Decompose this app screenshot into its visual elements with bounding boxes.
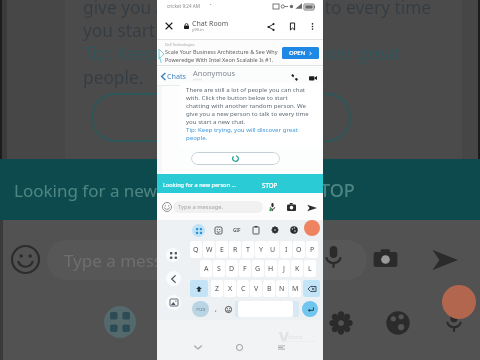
staticText: OPEN [289,49,306,57]
button[interactable]: W [203,241,215,258]
button[interactable]: H [265,260,277,277]
staticText: Type a message. [178,203,224,211]
staticText: N [279,284,285,294]
staticText: Anonymous [193,68,236,78]
staticText: Dell Technologies [165,42,195,47]
button[interactable]: Voice input [266,201,278,213]
staticText: O [296,245,302,255]
button[interactable]: Backspace [303,280,320,297]
button[interactable]: Home [232,340,246,354]
staticText: you start a new chat. [83,19,252,43]
button[interactable]: Keyboard layout [166,248,180,262]
button[interactable]: R [229,241,241,258]
button[interactable]: Keyboard [192,224,205,237]
staticText: K [295,264,300,274]
button[interactable]: J [278,260,290,277]
staticText: W [206,245,213,255]
button[interactable]: Close [160,17,177,34]
staticText: C [241,284,246,294]
button[interactable]: E [216,241,228,258]
button[interactable]: X [224,280,236,297]
staticText: ••••• [193,77,203,84]
button[interactable]: Recents [274,340,288,354]
button[interactable]: Emoji [223,301,233,317]
button[interactable]: Shift [190,280,208,297]
button[interactable]: U [267,241,279,258]
staticText: with. Click the button below to start [186,93,288,101]
staticText: J [283,264,285,274]
staticText: R [233,245,238,255]
button[interactable]: P [306,241,318,258]
button[interactable]: O [293,241,305,258]
button[interactable]: G [252,260,264,277]
staticText: L [308,264,312,274]
staticText: F [243,264,247,274]
button[interactable]: Enter [302,301,318,317]
button[interactable]: N [276,280,288,297]
button[interactable]: Y [255,241,267,258]
button[interactable]: Images [166,295,181,310]
staticText: Looking for a new person ... [163,181,236,189]
button[interactable]: D [226,260,238,277]
button[interactable]: K [291,260,303,277]
button[interactable]: V [250,280,262,297]
staticText: T [246,245,250,255]
button[interactable]: , [211,301,221,317]
button[interactable]: Camera [285,201,297,213]
button[interactable]: Q [190,241,202,258]
staticText: chatting with another random person. We [186,101,307,109]
button[interactable]: Symbols [192,301,209,317]
button[interactable]: I [280,241,292,258]
staticText: A [204,264,209,274]
button[interactable]: S [213,260,225,277]
button[interactable]: Settings [270,225,280,235]
button[interactable]: Share [262,18,279,35]
button[interactable]: A [200,260,212,277]
button[interactable]: OPEN [282,47,319,59]
button[interactable]: Type a message. [173,201,263,213]
button[interactable]: Collapse [166,271,181,286]
staticText: Tip: Keep trying, you will discover grea… [186,125,298,133]
button[interactable]: Voice typing [308,225,318,235]
button[interactable]: B [263,280,275,297]
staticText: • [210,2,212,7]
button[interactable]: Video call [307,72,318,83]
button[interactable]: C [237,280,249,297]
button[interactable]: More options [304,18,321,35]
staticText: Chats [167,71,187,81]
button[interactable]: Call [289,72,300,83]
staticText: Q [193,245,199,255]
button[interactable]: Back [191,340,205,354]
staticText: Tip: Keep trying, you will discover grea… [83,42,401,66]
staticText: Type a message. [64,249,197,272]
button[interactable]: Send [305,201,318,214]
staticText: M [292,284,299,294]
staticText: people. [83,66,144,90]
button[interactable]: L [304,260,316,277]
staticText: Poweredge With Intel Xeon Scalable Is #1… [165,56,274,63]
button[interactable]: M [289,280,301,297]
staticText: Looking for a new person ... [14,179,236,202]
button[interactable]: Stickers [213,225,223,235]
staticText: cricket 9:24 AM [167,3,200,9]
staticText: Y [259,245,263,255]
button[interactable]: F [239,260,251,277]
button[interactable]: Theme [289,225,299,235]
staticText: V [254,284,259,294]
button[interactable]: Bookmark [284,18,301,35]
button[interactable]: Chats [161,71,187,81]
staticText: Scale Your Business Architecture & See W… [165,48,278,55]
staticText: P [310,245,315,255]
button[interactable]: Clipboard [251,225,261,235]
button[interactable]: T [242,241,254,258]
staticText: GIF [233,227,241,233]
button[interactable]: New chat [191,152,280,165]
staticText: V [279,326,289,346]
staticText: B [267,284,272,294]
button[interactable]: Z [211,280,223,297]
button[interactable]: Looking for a new person ... [157,174,323,193]
button[interactable]: GIF [231,225,243,235]
staticText: , [215,304,217,314]
staticText: give you a new person to talk to every t… [186,109,309,117]
